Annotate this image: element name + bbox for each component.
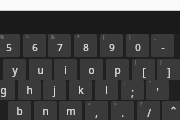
button[interactable]: ( [100, 34, 123, 57]
staticText: 0 [135, 41, 141, 54]
button[interactable]: < [85, 101, 108, 120]
staticText: 9 [109, 41, 115, 54]
button[interactable]: j [43, 80, 66, 100]
staticText: h [26, 83, 33, 97]
staticText: / [147, 106, 151, 120]
button[interactable]: ) [157, 59, 180, 80]
button[interactable]: h [18, 80, 41, 100]
button[interactable]: ( [132, 59, 155, 80]
button[interactable]: > [111, 101, 134, 120]
button[interactable]: i [54, 59, 77, 80]
button[interactable]: : [121, 80, 144, 100]
staticText: ( [135, 59, 137, 66]
button[interactable]: ^ [23, 34, 46, 57]
staticText: " [149, 80, 152, 87]
button[interactable]: * [74, 34, 97, 57]
staticText: ) [160, 59, 162, 66]
button[interactable]: k [69, 80, 92, 100]
staticText: b [16, 104, 23, 118]
staticText: , [95, 106, 98, 120]
staticText: 6 [32, 41, 38, 54]
staticText: 8 [83, 41, 89, 54]
staticText: u [37, 63, 44, 77]
button[interactable]: n [34, 101, 57, 120]
button[interactable]: " [146, 80, 169, 100]
button[interactable]: y [3, 59, 26, 80]
staticText: ( [103, 34, 105, 41]
button[interactable]: u [29, 59, 52, 80]
staticText: k [78, 83, 84, 97]
staticText: * [77, 34, 80, 41]
button[interactable]: ) [126, 34, 149, 57]
staticText: n [42, 104, 49, 118]
staticText: y [12, 63, 18, 77]
staticText: ? [140, 101, 143, 108]
staticText: i [64, 63, 67, 77]
staticText: [ [142, 65, 146, 79]
staticText: l [105, 83, 108, 97]
staticText: ' [156, 85, 159, 99]
staticText: ⌃ [169, 105, 178, 117]
staticText: - [161, 41, 165, 54]
button[interactable]: m [59, 101, 82, 120]
button[interactable]: o [80, 59, 103, 80]
staticText: o [88, 63, 95, 77]
staticText: m [66, 104, 76, 118]
staticText: . [121, 106, 124, 120]
staticText: 7 [57, 41, 63, 54]
button[interactable]: p [106, 59, 129, 80]
staticText: 5 [6, 41, 12, 54]
staticText: < [88, 101, 91, 108]
staticText: % [0, 34, 5, 41]
staticText: ] [167, 65, 171, 79]
staticText: ; [131, 85, 134, 99]
staticText: _ [154, 34, 157, 41]
staticText: > [114, 101, 117, 108]
staticText: p [114, 63, 121, 77]
button[interactable]: ⌃ [162, 101, 180, 120]
staticText: ^ [26, 34, 29, 41]
button[interactable]: % [0, 34, 20, 57]
button[interactable]: g [0, 80, 15, 100]
staticText: j [53, 83, 56, 97]
button[interactable]: _ [151, 34, 174, 57]
button[interactable]: l [95, 80, 118, 100]
button[interactable]: b [8, 101, 31, 120]
staticText: ) [129, 34, 131, 41]
staticText: g [0, 83, 7, 97]
staticText: : [124, 80, 126, 87]
staticText: & [51, 34, 55, 41]
button[interactable]: & [48, 34, 71, 57]
button[interactable]: ? [137, 101, 160, 120]
